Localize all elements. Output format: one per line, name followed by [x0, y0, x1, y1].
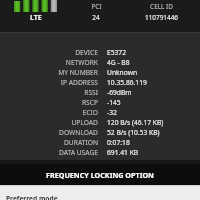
button[interactable]: Signal strength LTE	[12, 0, 64, 24]
button[interactable]: NETWORK	[0, 57, 200, 67]
staticText: UPLOAD	[0, 118, 98, 127]
button[interactable]: RSSI	[0, 87, 200, 97]
button[interactable]: DEVICE	[0, 47, 200, 57]
staticText: FREQUENCY LOCKING OPTION	[46, 170, 154, 180]
staticText: 4G - B8	[107, 58, 130, 67]
staticText: ECIO	[0, 108, 98, 117]
button[interactable]: FREQUENCY LOCKING OPTION	[0, 164, 200, 185]
staticText: RSSI	[0, 88, 98, 97]
button[interactable]: RSCP	[0, 97, 200, 107]
staticText: MY NUMBER	[0, 68, 98, 77]
staticText: CELL ID	[150, 2, 173, 11]
button[interactable]: ECIO	[0, 107, 200, 117]
staticText: 10.35.86.119	[107, 78, 147, 87]
staticText: -69dBm	[107, 88, 132, 97]
staticText: IP ADDRESS	[0, 78, 98, 87]
button[interactable]: DOWNLOAD	[0, 127, 200, 137]
staticText: DATA USAGE	[0, 148, 98, 157]
button[interactable]: UPLOAD	[0, 117, 200, 127]
staticText: 691.41 KB	[107, 148, 139, 157]
staticText: DURATION	[0, 138, 98, 147]
staticText: 0:07:18	[107, 138, 130, 147]
button[interactable]: DURATION	[0, 137, 200, 147]
staticText: DOWNLOAD	[0, 128, 98, 137]
staticText: 120 B/s (46.17 KB)	[107, 118, 164, 127]
staticText: 24	[92, 13, 100, 22]
button[interactable]: MY NUMBER	[0, 67, 200, 77]
button[interactable]: IP ADDRESS	[0, 77, 200, 87]
staticText: PCI	[91, 2, 102, 11]
staticText: LTE	[30, 13, 42, 23]
staticText: 110791446	[145, 13, 178, 22]
staticText: DEVICE	[0, 48, 98, 57]
staticText: Preferred mode	[6, 194, 58, 200]
staticText: RSCP	[0, 98, 98, 107]
staticText: Unknown	[107, 68, 138, 77]
staticText: 52 B/s (10.53 KB)	[107, 128, 160, 137]
staticText: -145	[107, 98, 121, 107]
button[interactable]: DATA USAGE	[0, 147, 200, 157]
staticText: E5372	[107, 48, 127, 57]
staticText: -32	[107, 108, 117, 117]
staticText: NETWORK	[0, 58, 98, 67]
